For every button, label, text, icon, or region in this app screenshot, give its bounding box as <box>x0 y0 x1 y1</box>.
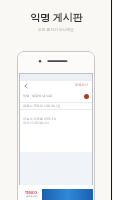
button[interactable]: Back <box>19 81 32 90</box>
button[interactable]: Advertisement <box>19 185 93 200</box>
staticText: 글로벌 리더 <box>26 195 38 198</box>
staticText: TENCO <box>25 190 38 195</box>
staticText: 등록하기 <box>75 83 88 87</box>
staticText: 오늘도 하루를 버텨내신 당신이 대단합니다 <box>23 117 57 125</box>
staticText: 힘들고 외로운 사람 없나요 <box>23 104 61 108</box>
staticText: 우린 혼자가 아니에요 <box>38 27 75 32</box>
button[interactable]: 등록하기 <box>75 83 88 87</box>
staticText: 익명 게시판 <box>30 10 83 24</box>
staticText: 익명 · 방금전 남긴글 <box>23 94 52 98</box>
